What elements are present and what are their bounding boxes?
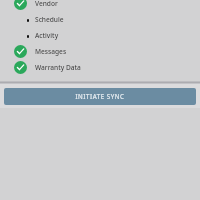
button[interactable]: Warranty Data xyxy=(0,59,200,75)
button[interactable]: Vendor xyxy=(0,0,200,11)
button[interactable]: Schedule xyxy=(0,11,200,27)
staticText: Schedule xyxy=(35,15,64,24)
staticText: Vendor xyxy=(35,0,58,8)
button[interactable]: INITIATE SYNC xyxy=(4,88,196,105)
button[interactable]: Activity xyxy=(0,27,200,43)
staticText: INITIATE SYNC xyxy=(75,92,125,100)
button[interactable]: Messages xyxy=(0,43,200,59)
staticText: Messages xyxy=(35,47,67,56)
staticText: Warranty Data xyxy=(35,63,81,72)
staticText: Activity xyxy=(35,31,59,40)
